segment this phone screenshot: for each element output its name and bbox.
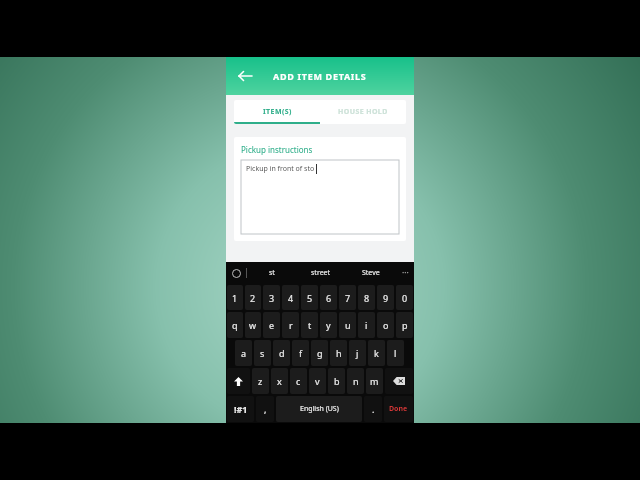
- button[interactable]: 3: [263, 285, 280, 310]
- staticText: ADD ITEM DETAILS: [273, 70, 367, 82]
- staticText: Done: [389, 404, 408, 414]
- staticText: c: [296, 375, 301, 387]
- button[interactable]: st: [247, 262, 296, 284]
- button[interactable]: m: [366, 368, 383, 394]
- staticText: 0: [402, 292, 408, 304]
- staticText: 6: [326, 292, 332, 304]
- staticText: 5: [307, 292, 313, 304]
- button[interactable]: y: [320, 312, 337, 338]
- button[interactable]: English (US): [276, 396, 362, 422]
- staticText: ITEM(S): [263, 107, 292, 117]
- button[interactable]: Back: [232, 63, 258, 89]
- button[interactable]: v: [309, 368, 326, 394]
- staticText: v: [315, 375, 320, 387]
- button[interactable]: More suggestions: [396, 262, 414, 284]
- button[interactable]: a: [235, 340, 252, 366]
- staticText: a: [241, 347, 247, 359]
- button[interactable]: o: [377, 312, 394, 338]
- button[interactable]: w: [245, 312, 261, 338]
- staticText: 4: [288, 292, 294, 304]
- staticText: Pickup instructions: [241, 144, 313, 155]
- button[interactable]: ITEM(S): [234, 100, 320, 124]
- button[interactable]: t: [301, 312, 318, 338]
- button[interactable]: 7: [339, 285, 356, 310]
- button[interactable]: x: [271, 368, 288, 394]
- button[interactable]: 6: [320, 285, 337, 310]
- button[interactable]: Done: [384, 396, 413, 422]
- button[interactable]: j: [349, 340, 366, 366]
- button[interactable]: p: [396, 312, 413, 338]
- staticText: Pickup in front of sto: [246, 164, 315, 174]
- button[interactable]: h: [330, 340, 347, 366]
- button[interactable]: k: [368, 340, 385, 366]
- button[interactable]: .: [364, 396, 382, 422]
- staticText: u: [345, 319, 351, 331]
- staticText: q: [232, 319, 238, 331]
- button[interactable]: z: [252, 368, 269, 394]
- staticText: l: [394, 347, 397, 359]
- button[interactable]: s: [254, 340, 271, 366]
- staticText: e: [269, 319, 275, 331]
- staticText: 7: [345, 292, 351, 304]
- staticText: Steve: [362, 268, 380, 278]
- button[interactable]: u: [339, 312, 356, 338]
- button[interactable]: 9: [377, 285, 394, 310]
- staticText: 8: [364, 292, 370, 304]
- staticText: street: [311, 268, 331, 278]
- staticText: HOUSE HOLD: [338, 107, 388, 117]
- button[interactable]: g: [311, 340, 328, 366]
- staticText: 2: [250, 292, 256, 304]
- button[interactable]: q: [227, 312, 243, 338]
- button[interactable]: street: [296, 262, 346, 284]
- staticText: ,: [264, 403, 267, 415]
- button[interactable]: HOUSE HOLD: [320, 100, 406, 124]
- staticText: g: [317, 347, 323, 359]
- staticText: r: [289, 319, 293, 331]
- button[interactable]: 1: [227, 285, 243, 310]
- button[interactable]: n: [347, 368, 364, 394]
- button[interactable]: 4: [282, 285, 299, 310]
- button[interactable]: b: [328, 368, 345, 394]
- button[interactable]: f: [292, 340, 309, 366]
- button[interactable]: d: [273, 340, 290, 366]
- staticText: t: [308, 319, 312, 331]
- staticText: s: [260, 347, 265, 359]
- staticText: n: [353, 375, 359, 387]
- staticText: d: [279, 347, 285, 359]
- button[interactable]: 0: [396, 285, 413, 310]
- staticText: 9: [383, 292, 389, 304]
- staticText: f: [299, 347, 303, 359]
- staticText: p: [402, 319, 408, 331]
- staticText: z: [258, 375, 263, 387]
- button[interactable]: !#1: [227, 396, 254, 422]
- staticText: b: [334, 375, 340, 387]
- staticText: 1: [232, 292, 238, 304]
- staticText: English (US): [300, 404, 339, 414]
- button[interactable]: c: [290, 368, 307, 394]
- button[interactable]: 5: [301, 285, 318, 310]
- button[interactable]: Steve: [346, 262, 396, 284]
- staticText: st: [269, 268, 275, 278]
- button[interactable]: 2: [245, 285, 261, 310]
- button[interactable]: e: [263, 312, 280, 338]
- staticText: k: [374, 347, 379, 359]
- staticText: j: [356, 347, 359, 359]
- button[interactable]: r: [282, 312, 299, 338]
- staticText: y: [326, 319, 331, 331]
- staticText: o: [383, 319, 389, 331]
- button[interactable]: Shift: [227, 368, 250, 394]
- button[interactable]: Emoji: [226, 262, 246, 284]
- button[interactable]: i: [358, 312, 375, 338]
- button[interactable]: Backspace: [385, 368, 413, 394]
- button[interactable]: l: [387, 340, 404, 366]
- staticText: 3: [269, 292, 275, 304]
- staticText: !#1: [234, 403, 248, 415]
- staticText: h: [336, 347, 342, 359]
- button[interactable]: 8: [358, 285, 375, 310]
- staticText: i: [365, 319, 368, 331]
- staticText: .: [372, 403, 375, 415]
- staticText: w: [249, 319, 257, 331]
- button[interactable]: ,: [256, 396, 274, 422]
- button[interactable]: Pickup in front of sto: [241, 160, 399, 234]
- staticText: m: [370, 375, 379, 387]
